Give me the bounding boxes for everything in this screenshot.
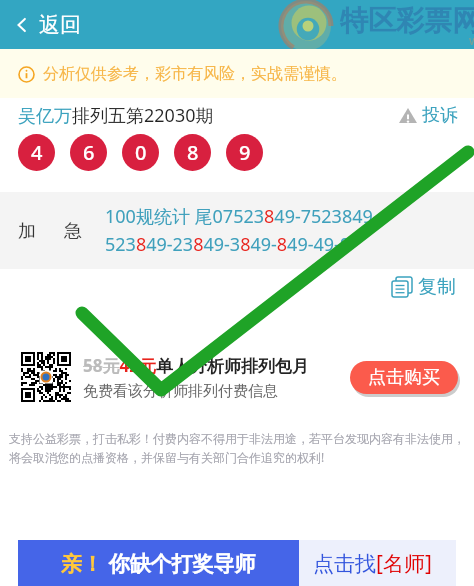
staticText: 吴亿万排列五第22030期	[18, 103, 214, 128]
button[interactable]: 投诉	[398, 104, 458, 127]
staticText: 4	[31, 139, 43, 166]
button[interactable]: 点击购买	[350, 361, 458, 394]
staticText: 8	[187, 139, 199, 166]
staticText: 将会取消您的点播资格，并保留与有关部门合作追究的权利!	[9, 449, 325, 465]
staticText: 6	[83, 139, 95, 166]
staticText: 58元42元单人分析师排列包月	[83, 354, 309, 377]
staticText: 点击找[名师]	[313, 549, 432, 578]
staticText: 免费看该分析师排列付费信息	[83, 382, 278, 401]
staticText: 0	[135, 139, 147, 166]
staticText: 523849-23849-3849-849-49-9	[105, 232, 351, 257]
staticText: 返回	[39, 12, 81, 38]
staticText: 特区彩票网	[340, 3, 474, 38]
staticText: 亲！ 你缺个打奖导师	[61, 549, 256, 578]
button[interactable]: 返回	[14, 12, 81, 38]
staticText: 9	[239, 139, 251, 166]
staticText: 加 急	[18, 218, 83, 243]
button[interactable]: 亲！ 你缺个打奖导师	[18, 540, 456, 586]
staticText: 复制	[418, 275, 456, 299]
staticText: 点击购买	[368, 366, 440, 389]
staticText: www.tqcp.net	[469, 31, 474, 49]
button[interactable]: 复制	[391, 275, 456, 299]
staticText: 支持公益彩票，打击私彩！付费内容不得用于非法用途，若平台发现内容有非法使用，	[9, 431, 465, 446]
staticText: 100规统计 尾07523849-7523849-	[105, 204, 379, 229]
staticText: 投诉	[422, 104, 458, 127]
staticText: 分析仅供参考，彩市有风险，实战需谨慎。	[43, 64, 347, 84]
